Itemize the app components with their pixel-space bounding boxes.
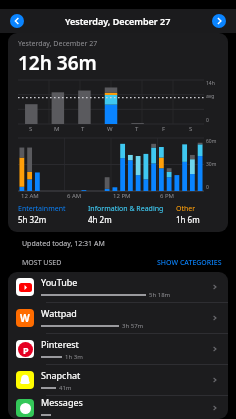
- staticText: Yesterday, December 27: [65, 15, 171, 27]
- button[interactable]: P: [8, 334, 228, 364]
- button[interactable]: Snapchat: [8, 365, 228, 395]
- button[interactable]: SHOW CATEGORIES: [157, 258, 222, 268]
- staticText: 3h 57m: [122, 322, 144, 330]
- staticText: 5h 18m: [149, 291, 171, 299]
- staticText: W: [20, 311, 30, 325]
- staticText: 12 AM: [21, 192, 39, 200]
- staticText: T: [81, 125, 85, 133]
- button[interactable]: Previous day: [10, 14, 24, 28]
- button[interactable]: Next day: [212, 14, 226, 28]
- staticText: 5h 32m: [18, 214, 47, 225]
- staticText: S: [29, 125, 33, 133]
- staticText: Snapchat: [41, 369, 81, 381]
- staticText: Messages: [41, 396, 83, 408]
- button[interactable]: Messages: [8, 396, 228, 419]
- button[interactable]: YouTube: [8, 272, 228, 302]
- staticText: 6 PM: [160, 192, 175, 200]
- button[interactable]: Yesterday, December 27: [8, 33, 228, 232]
- staticText: Yesterday, December 27: [18, 39, 98, 49]
- staticText: T: [135, 125, 139, 133]
- staticText: 1h 6m: [176, 214, 200, 225]
- staticText: P: [23, 344, 29, 356]
- staticText: avg: [206, 93, 215, 100]
- staticText: Information & Reading: [88, 204, 164, 214]
- staticText: Pinterest: [41, 338, 79, 350]
- staticText: Wattpad: [41, 307, 77, 319]
- staticText: S: [189, 125, 193, 133]
- staticText: W: [107, 125, 113, 133]
- staticText: 30m: [206, 161, 217, 168]
- staticText: YouTube: [41, 276, 78, 288]
- staticText: M: [54, 125, 60, 133]
- staticText: 6 AM: [67, 192, 82, 200]
- staticText: SHOW CATEGORIES: [157, 258, 222, 268]
- staticText: 4h 2m: [88, 214, 112, 225]
- staticText: MOST USED: [22, 258, 62, 268]
- staticText: 60m: [206, 138, 217, 145]
- staticText: 41m: [59, 384, 72, 392]
- staticText: Other: [176, 204, 196, 214]
- staticText: F: [162, 125, 166, 133]
- staticText: 12h 36m: [18, 50, 97, 76]
- staticText: Updated today, 12:31 AM: [22, 239, 105, 249]
- staticText: 12 PM: [113, 192, 131, 200]
- staticText: 14h: [206, 80, 215, 87]
- staticText: 0: [206, 117, 209, 124]
- staticText: 0: [206, 184, 209, 191]
- staticText: 1h 3m: [65, 353, 83, 361]
- button[interactable]: W: [8, 303, 228, 333]
- staticText: Entertainment: [18, 204, 66, 214]
